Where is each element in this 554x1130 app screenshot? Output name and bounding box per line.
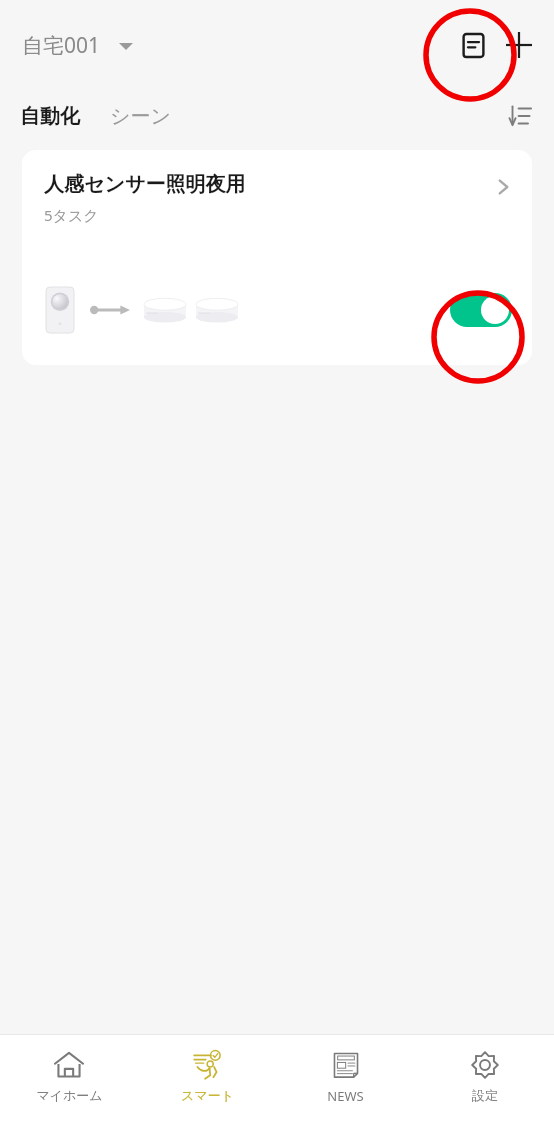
button[interactable]: Automation enabled [450,293,512,327]
staticText: スマート [181,1087,234,1103]
staticText: 設定 [472,1087,498,1103]
button[interactable]: 自動化 [18,98,82,135]
button[interactable]: 自宅001 [18,25,137,66]
button[interactable]: シーン [108,98,173,135]
staticText: シーン [110,104,171,129]
staticText: 人感センサー照明夜用 [44,172,246,197]
staticText: 5タスク [44,205,99,225]
staticText: 自動化 [20,104,80,129]
staticText: マイホーム [36,1087,103,1103]
button[interactable]: Logs [450,22,496,68]
button[interactable]: Add [496,22,542,68]
staticText: NEWS [327,1087,364,1105]
staticText: 自宅001 [22,31,101,60]
button[interactable]: 人感センサー照明夜用 [22,150,532,255]
button[interactable]: スマート [138,1035,276,1130]
button[interactable]: Sort [500,96,540,136]
button[interactable]: 設定 [415,1035,554,1130]
button[interactable]: マイホーム [0,1035,138,1130]
button[interactable]: NEWS [276,1035,415,1130]
